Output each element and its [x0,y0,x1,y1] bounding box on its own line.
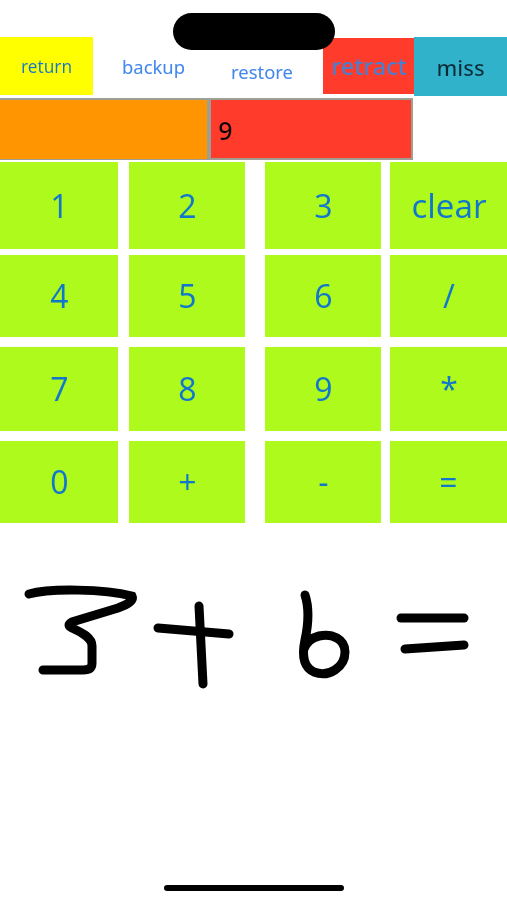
button[interactable]: / [390,255,507,337]
button[interactable]: 1 [0,162,118,249]
staticText: 2 [178,184,197,228]
button[interactable]: 3 [265,162,381,249]
staticText: 0 [50,460,69,504]
button[interactable]: 4 [0,255,118,337]
button[interactable]: 8 [129,347,245,431]
staticText: 5 [178,274,197,318]
staticText: 3 [314,184,333,228]
staticText: * [440,367,458,411]
staticText: 9 [218,113,233,147]
button[interactable]: = [390,441,507,523]
button[interactable]: - [265,441,381,523]
button[interactable]: miss [414,37,507,96]
button[interactable]: 9 [265,347,381,431]
button[interactable]: * [390,347,507,431]
staticText: 8 [178,367,197,411]
button[interactable]: + [129,441,245,523]
staticText: 6 [314,274,333,318]
button[interactable]: restore [217,42,307,100]
button[interactable]: clear [390,162,507,249]
staticText: - [318,460,329,504]
button[interactable]: 2 [129,162,245,249]
button[interactable]: retract [323,38,414,94]
staticText: / [443,274,455,318]
button[interactable]: 6 [265,255,381,337]
staticText: retract [331,50,407,82]
staticText: = [439,460,458,504]
button[interactable]: 7 [0,347,118,431]
button[interactable]: 0 [0,441,118,523]
staticText: restore [231,59,293,84]
staticText: clear [411,183,487,228]
staticText: 7 [50,367,69,411]
staticText: 4 [50,274,69,318]
staticText: 9 [314,367,333,411]
button[interactable]: backup [108,37,199,95]
staticText: miss [436,52,485,82]
button[interactable]: 9 [211,100,411,158]
button[interactable]: return [0,37,93,95]
staticText: 1 [50,184,69,228]
staticText: return [21,55,72,78]
staticText: backup [122,54,185,79]
staticText: + [178,460,197,504]
button[interactable]: 5 [129,255,245,337]
other: Handwriting input area: 3 + 6 = [0,0,507,900]
